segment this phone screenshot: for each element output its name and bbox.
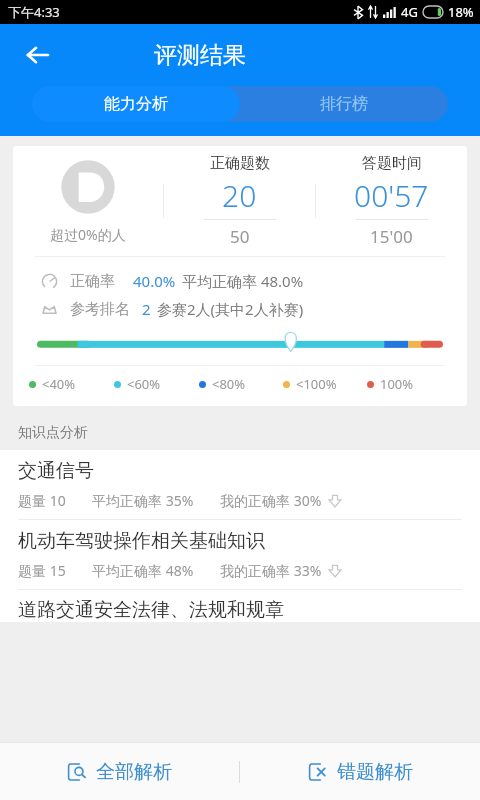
staticText: 知识点分析 — [18, 424, 88, 442]
button[interactable]: Back — [18, 35, 58, 75]
staticText: 正确率 — [70, 272, 115, 291]
staticText: 50 — [230, 225, 250, 248]
staticText: <80% — [212, 375, 246, 393]
staticText: 15'00 — [370, 225, 413, 248]
staticText: 全部解析 — [96, 760, 172, 784]
staticText: 平均正确率 35% — [92, 491, 194, 510]
staticText: 平均正确率 48% — [92, 561, 194, 580]
staticText: 参赛2人(其中2人补赛) — [157, 299, 304, 319]
staticText: <100% — [296, 375, 337, 393]
button[interactable]: 错题解析 — [240, 743, 480, 800]
staticText: 正确题数 — [210, 154, 270, 173]
staticText: 能力分析 — [104, 94, 168, 114]
staticText: 100% — [380, 375, 414, 393]
staticText: <40% — [42, 375, 76, 393]
staticText: 超过0%的人 — [50, 225, 126, 244]
button[interactable]: 全部解析 — [0, 743, 239, 800]
staticText: 40.0% — [133, 271, 176, 291]
staticText: 平均正确率 48.0% — [182, 271, 304, 291]
staticText: 18% — [448, 3, 474, 21]
staticText: 我的正确率 33% — [220, 561, 322, 580]
staticText: 2 — [142, 299, 151, 319]
button[interactable]: 机动车驾驶操作相关基础知识 — [0, 520, 480, 590]
staticText: 20 — [222, 175, 257, 216]
button[interactable]: 能力分析 — [32, 86, 240, 122]
button[interactable]: 排行榜 — [240, 86, 448, 122]
staticText: 机动车驾驶操作相关基础知识 — [18, 529, 265, 553]
staticText: 00'57 — [354, 175, 429, 216]
staticText: 题量 10 — [18, 491, 66, 510]
staticText: 错题解析 — [337, 760, 413, 784]
staticText: 答题时间 — [362, 154, 422, 173]
button[interactable]: 交通信号 — [0, 450, 480, 520]
staticText: 参考排名 — [70, 300, 130, 319]
staticText: 4G — [401, 3, 418, 21]
staticText: 题量 15 — [18, 561, 66, 580]
staticText: 下午4:33 — [8, 3, 60, 21]
staticText: 评测结果 — [154, 41, 246, 70]
staticText: 我的正确率 30% — [220, 491, 322, 510]
staticText: 道路交通安全法律、法规和规章 — [18, 598, 284, 622]
staticText: 排行榜 — [320, 94, 368, 114]
staticText: <60% — [127, 375, 161, 393]
staticText: 交通信号 — [18, 459, 94, 483]
